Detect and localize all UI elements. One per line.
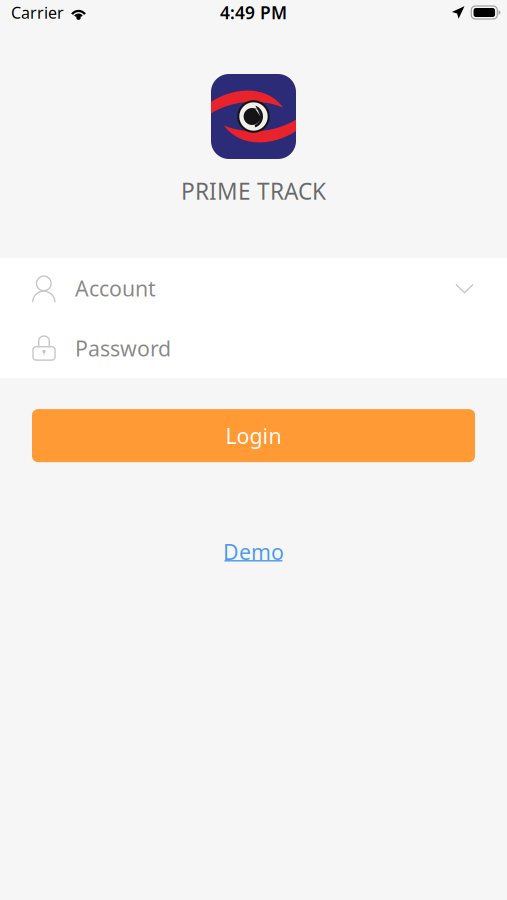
staticText: Login (225, 421, 281, 450)
button[interactable]: Account (0, 258, 507, 318)
button[interactable]: Password (0, 318, 507, 378)
staticText: Carrier (11, 2, 64, 23)
staticText: Account (75, 274, 156, 302)
staticText: Demo (223, 537, 284, 566)
staticText: Password (75, 334, 171, 362)
button[interactable]: Demo (223, 543, 284, 561)
staticText: PRIME TRACK (181, 176, 326, 206)
button[interactable]: Login (32, 409, 475, 462)
staticText: 4:49 PM (220, 1, 287, 24)
